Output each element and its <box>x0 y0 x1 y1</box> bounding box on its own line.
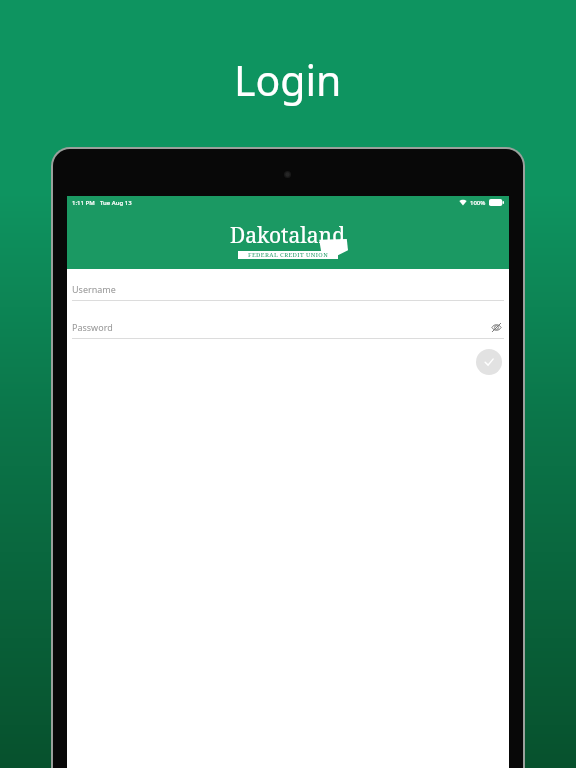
staticText: 1:11 PM <box>72 199 95 207</box>
staticText: Login <box>234 52 342 108</box>
staticText: Tue Aug 13 <box>100 199 132 207</box>
button[interactable]: Submit login <box>476 349 502 375</box>
button[interactable]: Show password <box>488 319 504 335</box>
button[interactable]: Password <box>67 315 509 339</box>
staticText: FEDERAL CREDIT UNION <box>248 251 329 259</box>
staticText: Dakotaland <box>230 221 346 250</box>
staticText: Username <box>72 283 116 295</box>
staticText: Password <box>72 321 113 333</box>
button[interactable]: Username <box>67 277 509 301</box>
staticText: 100% <box>470 199 486 207</box>
